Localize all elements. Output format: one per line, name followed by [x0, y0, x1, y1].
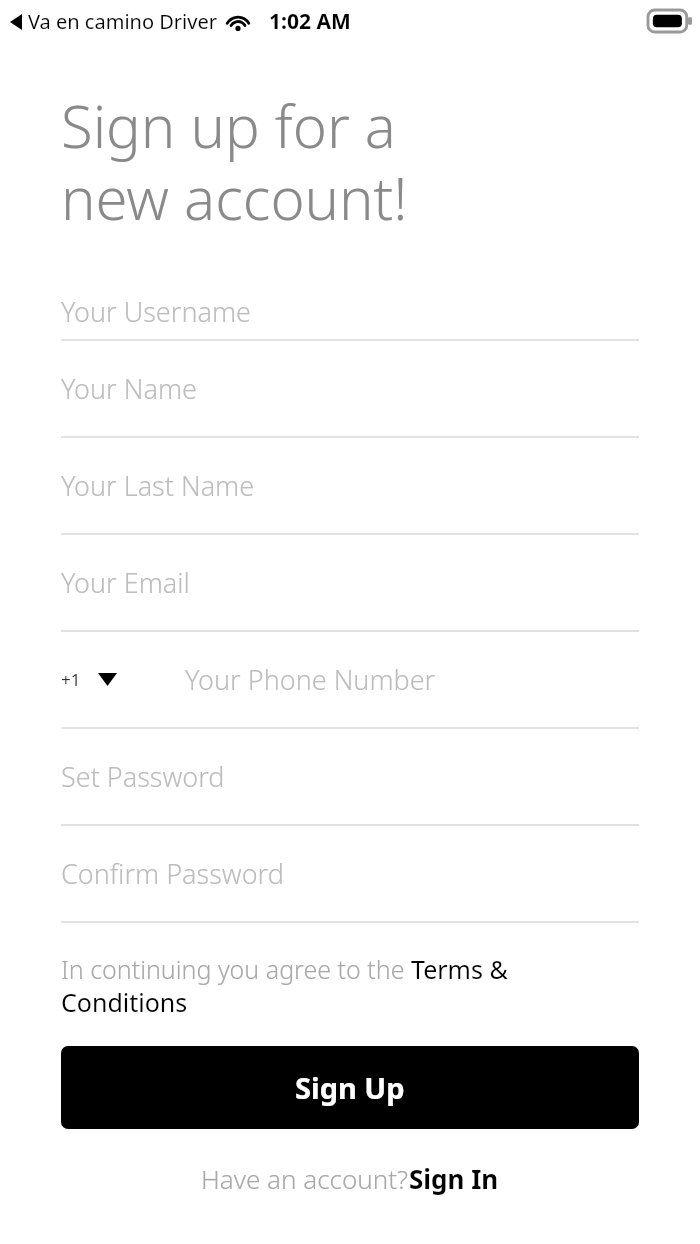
staticText: Set Password	[61, 758, 225, 795]
staticText: Sign up for a new account!	[61, 86, 408, 237]
staticText: Have an account?	[201, 1161, 409, 1196]
staticText: Your Name	[61, 370, 197, 407]
staticText: 1:02 AM	[269, 7, 351, 36]
button[interactable]: Set Password	[61, 729, 639, 824]
staticText: Your Last Name	[61, 467, 255, 504]
button[interactable]: Your Username	[61, 283, 639, 339]
button[interactable]: Confirm Password	[61, 826, 639, 921]
staticText: Va en camino Driver	[28, 8, 217, 35]
staticText: Confirm Password	[61, 855, 284, 892]
button[interactable]: Select country code	[61, 668, 121, 691]
button[interactable]: Sign Up	[61, 1046, 639, 1129]
button[interactable]: Your Email	[61, 535, 639, 630]
staticText: Sign Up	[295, 1068, 405, 1107]
staticText: Your Username	[61, 293, 251, 330]
staticText: Sign In	[409, 1161, 499, 1196]
button[interactable]: Your Name	[61, 341, 639, 436]
button[interactable]: In continuing you agree to the Terms & C…	[61, 952, 639, 1019]
button[interactable]: Your Last Name	[61, 438, 639, 533]
staticText: +1	[61, 668, 81, 691]
staticText: Your Phone Number	[185, 661, 436, 698]
button[interactable]: Have an account?	[0, 1161, 700, 1196]
button[interactable]: Select country code	[61, 632, 639, 727]
staticText: Your Email	[61, 564, 190, 601]
